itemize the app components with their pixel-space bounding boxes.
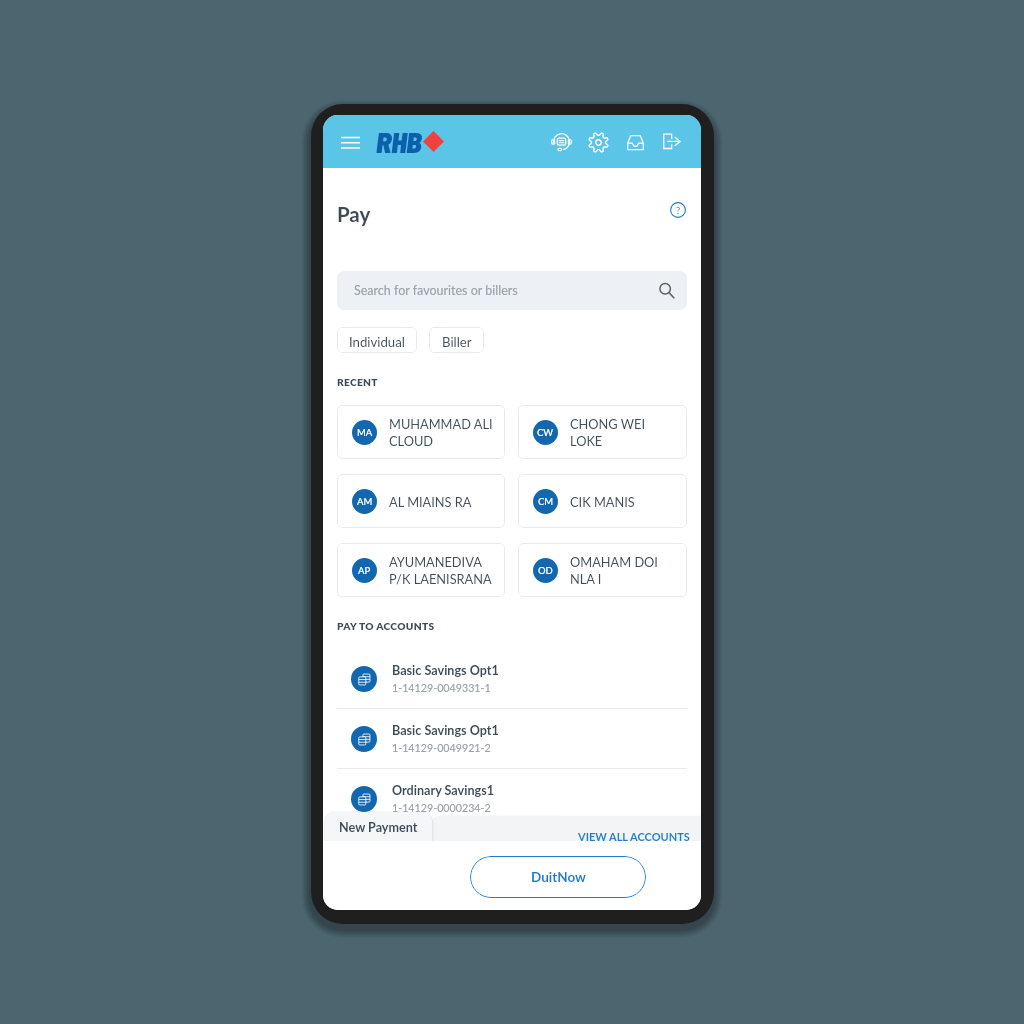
- staticText: 1-14129-0000234-2: [392, 801, 491, 814]
- staticText: Basic Savings Opt1: [392, 723, 499, 738]
- button[interactable]: Basic Savings Opt1: [337, 709, 687, 768]
- staticText: AM: [357, 496, 373, 507]
- button[interactable]: DuitNow: [470, 856, 646, 898]
- staticText: AL MIAINS RA: [389, 494, 472, 509]
- button[interactable]: New Payment: [325, 812, 432, 842]
- button[interactable]: CW: [518, 405, 687, 459]
- button[interactable]: VIEW ALL ACCOUNTS: [578, 830, 690, 843]
- button[interactable]: Help: [667, 199, 689, 221]
- staticText: PAY TO ACCOUNTS: [337, 620, 435, 632]
- staticText: MUHAMMAD ALI CLOUD: [389, 416, 493, 449]
- staticText: ?: [676, 205, 681, 216]
- staticText: New Payment: [339, 820, 418, 835]
- staticText: Search for favourites or billers: [354, 283, 518, 298]
- staticText: RHB: [376, 124, 422, 159]
- button[interactable]: Ordinary Savings1: [337, 769, 687, 828]
- staticText: RECENT: [337, 376, 378, 388]
- button[interactable]: CM: [518, 474, 687, 528]
- staticText: CHONG WEI LOKE: [570, 416, 646, 449]
- staticText: OD: [538, 565, 553, 576]
- staticText: Individual: [349, 334, 405, 350]
- button[interactable]: Customer support: [546, 127, 576, 157]
- staticText: DuitNow: [531, 869, 586, 885]
- button[interactable]: Search for favourites or billers: [337, 271, 687, 310]
- button[interactable]: RHB home: [376, 124, 444, 159]
- button[interactable]: AP: [337, 543, 505, 597]
- button[interactable]: Inbox: [620, 127, 650, 157]
- button[interactable]: MA: [337, 405, 505, 459]
- staticText: Ordinary Savings1: [392, 783, 495, 798]
- staticText: CW: [537, 427, 554, 438]
- button[interactable]: AM: [337, 474, 505, 528]
- staticText: CM: [538, 496, 554, 507]
- button[interactable]: Menu: [335, 127, 365, 157]
- staticText: 1-14129-0049331-1: [392, 681, 491, 694]
- button[interactable]: Settings: [583, 127, 613, 157]
- staticText: CIK MANIS: [570, 494, 635, 509]
- button[interactable]: Basic Savings Opt1: [337, 649, 687, 708]
- staticText: Biller: [442, 334, 472, 350]
- staticText: AYUMANEDIVA P/K LAENISRANA: [389, 554, 492, 587]
- staticText: AP: [358, 565, 371, 576]
- button[interactable]: OD: [518, 543, 687, 597]
- staticText: 1-14129-0049921-2: [392, 741, 491, 754]
- staticText: Pay: [337, 202, 371, 227]
- staticText: Basic Savings Opt1: [392, 663, 499, 678]
- staticText: OMAHAM DOI NLA I: [570, 554, 658, 587]
- button[interactable]: Log out: [657, 127, 687, 157]
- staticText: MA: [357, 427, 373, 438]
- button[interactable]: Biller: [429, 327, 484, 353]
- button[interactable]: Individual: [337, 327, 417, 353]
